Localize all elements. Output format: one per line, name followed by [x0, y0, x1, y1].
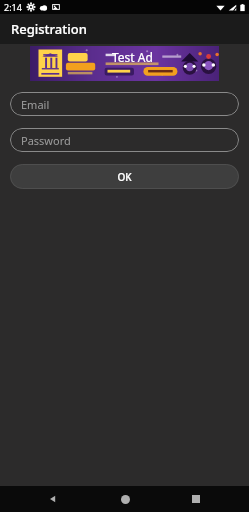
staticText: Email: [21, 97, 50, 112]
staticText: Test Ad: [112, 49, 153, 65]
button[interactable]: Password: [10, 128, 239, 152]
button[interactable]: Back: [35, 486, 71, 512]
button[interactable]: Home: [107, 486, 143, 512]
button[interactable]: Recent apps: [178, 486, 214, 512]
staticText: 2:14: [4, 1, 22, 13]
button[interactable]: Test Ad banner: [30, 46, 219, 81]
staticText: Registration: [11, 20, 87, 38]
staticText: Password: [21, 133, 71, 148]
button[interactable]: Email: [10, 92, 239, 116]
staticText: OK: [117, 170, 132, 184]
button[interactable]: OK: [10, 164, 239, 189]
